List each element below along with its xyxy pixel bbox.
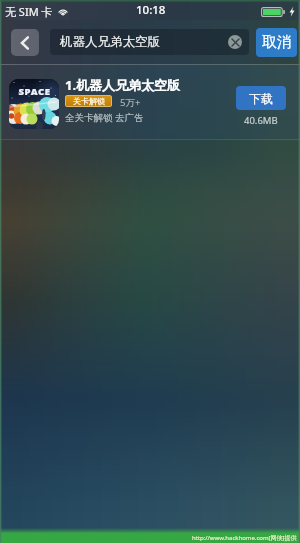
button[interactable]: SPACE bbox=[0, 65, 300, 140]
button[interactable]: Clear search bbox=[228, 35, 242, 49]
button[interactable]: 下载 bbox=[236, 86, 286, 110]
staticText: http://www.hackhome.com[网侠]提供 bbox=[192, 534, 297, 542]
staticText: 10:18 bbox=[136, 2, 166, 18]
staticText: SPACE bbox=[18, 85, 51, 98]
staticText: 机器人兄弟太空版 bbox=[60, 34, 160, 50]
button[interactable]: 取消 bbox=[256, 28, 297, 57]
button[interactable]: Back bbox=[11, 29, 39, 56]
staticText: 取消 bbox=[262, 33, 292, 52]
staticText: 下载 bbox=[249, 91, 273, 106]
button[interactable]: 机器人兄弟太空版 bbox=[50, 29, 249, 55]
staticText: 5万+ bbox=[120, 96, 141, 109]
staticText: 无 SIM 卡 bbox=[5, 4, 53, 19]
staticText: 1.机器人兄弟太空版 bbox=[65, 76, 181, 94]
staticText: 全关卡解锁 去广告 bbox=[65, 111, 144, 124]
staticText: 40.6MB bbox=[244, 114, 278, 127]
staticText: 关卡解锁 bbox=[73, 96, 105, 106]
